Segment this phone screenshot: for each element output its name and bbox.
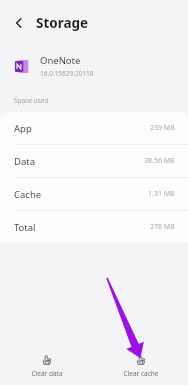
staticText: Space used xyxy=(14,96,49,105)
staticText: 278 MB xyxy=(150,222,175,232)
staticText: Cache xyxy=(14,188,42,201)
staticText: 239 MB xyxy=(150,123,175,133)
button[interactable]: Data xyxy=(0,145,188,177)
staticText: 38.56 MB xyxy=(144,156,175,166)
staticText: Storage xyxy=(36,14,89,32)
button[interactable]: Clear cache xyxy=(94,351,188,381)
button[interactable]: Clear data xyxy=(0,351,94,381)
staticText: 1.31 MB xyxy=(148,189,175,199)
button[interactable]: Total xyxy=(0,211,188,243)
button[interactable]: App xyxy=(0,112,188,144)
staticText: Clear data xyxy=(31,369,63,378)
button[interactable]: Cache xyxy=(0,178,188,210)
button[interactable]: Back xyxy=(8,12,30,34)
staticText: OneNote xyxy=(40,54,81,67)
staticText: Clear cache xyxy=(123,369,159,378)
staticText: App xyxy=(14,122,32,135)
staticText: 16.0.15629.20118 xyxy=(40,69,94,78)
staticText: Total xyxy=(14,221,36,234)
button[interactable]: OneNote xyxy=(0,46,188,86)
staticText: Data xyxy=(14,155,36,168)
